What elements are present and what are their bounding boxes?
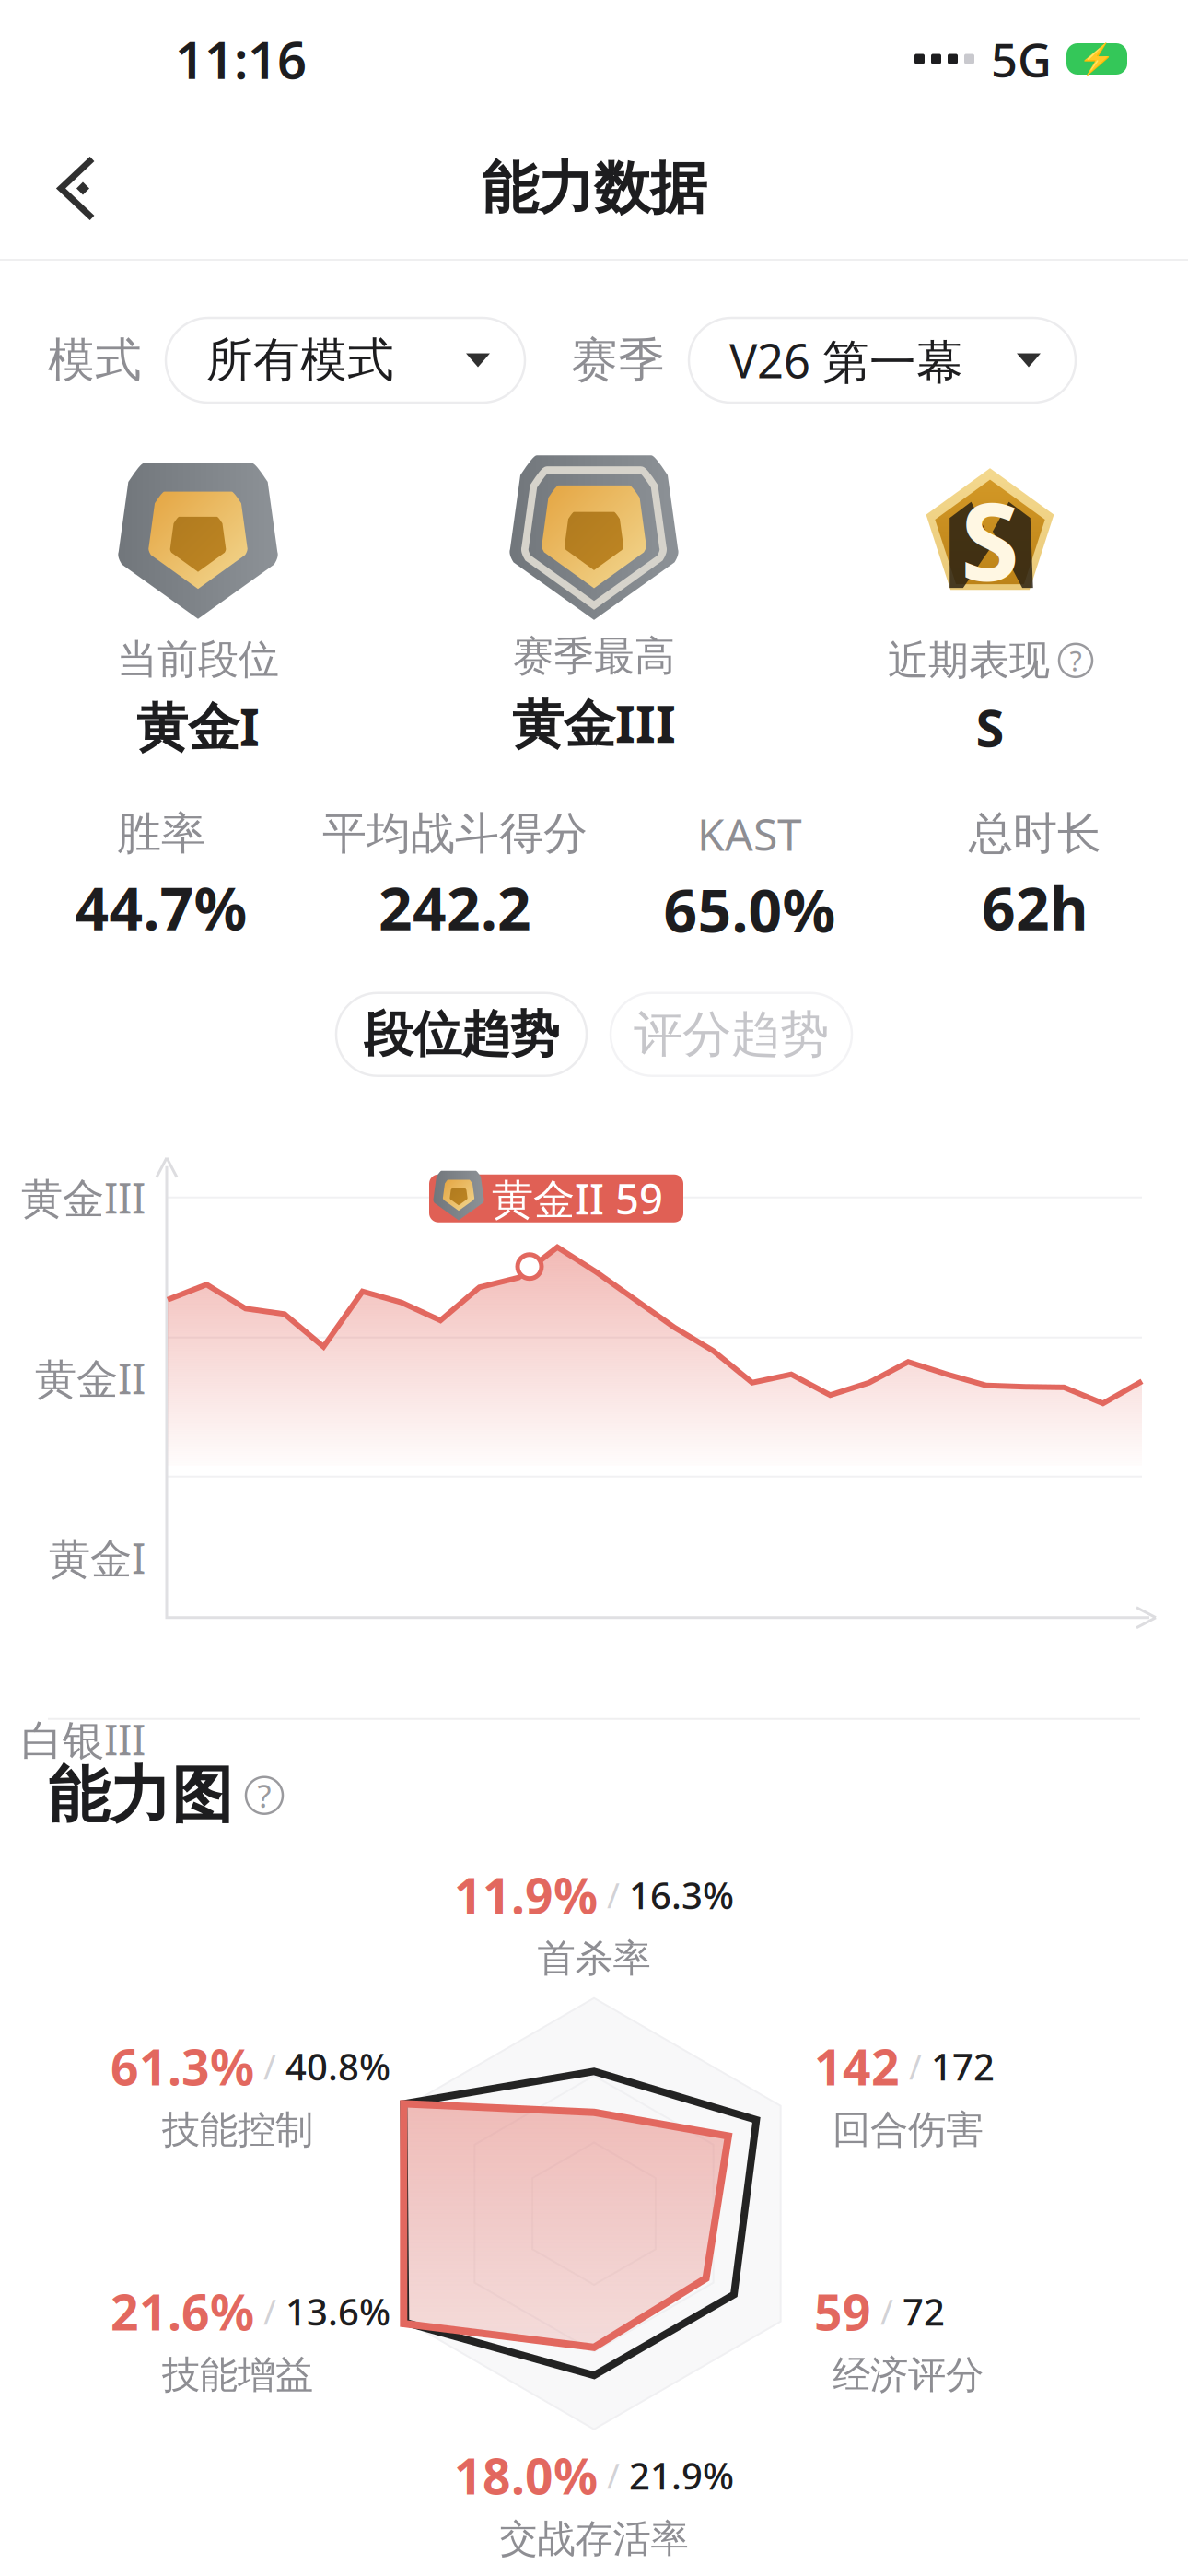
staticText: 赛季最高 (513, 631, 675, 681)
staticText: 白银III (21, 1711, 146, 1767)
staticText: 黄金III (21, 1170, 146, 1225)
staticText: 61.3% (111, 2034, 254, 2099)
staticText: 平均战斗得分 (322, 807, 588, 861)
staticText: 72 (903, 2287, 945, 2336)
staticText: ? (1070, 642, 1082, 679)
staticText: 技能控制 (162, 2106, 313, 2153)
staticText: 242.2 (379, 868, 531, 946)
staticText: 13.6% (285, 2287, 390, 2336)
staticText: / (900, 2043, 931, 2089)
staticText: ? (257, 1774, 271, 1817)
staticText: ⚡ (1078, 42, 1115, 76)
staticText: 经济评分 (833, 2351, 984, 2398)
staticText: 技能增益 (162, 2351, 313, 2398)
staticText: 黄金I (136, 692, 260, 760)
staticText: 总时长 (969, 807, 1101, 861)
staticText: / (871, 2288, 903, 2334)
staticText: 21.6% (111, 2279, 254, 2344)
staticText: 65.0% (664, 870, 836, 949)
staticText: / (598, 1872, 629, 1918)
button[interactable]: 评分趋势 (611, 993, 852, 1076)
staticText: 当前段位 (117, 635, 279, 684)
staticText: S (961, 468, 1019, 610)
staticText: 回合伤害 (833, 2106, 984, 2153)
staticText: 黄金III (512, 688, 676, 757)
button[interactable]: 返回 (42, 146, 112, 231)
staticText: 40.8% (285, 2042, 390, 2091)
button[interactable]: 所有模式 (166, 318, 525, 403)
staticText: S (976, 693, 1004, 761)
staticText: 62h (982, 868, 1089, 946)
staticText: 59 (814, 2279, 871, 2344)
staticText: V26 第一幕 (729, 329, 963, 391)
staticText: 44.7% (75, 868, 247, 946)
staticText: 18.0% (454, 2443, 598, 2508)
staticText: / (598, 2452, 629, 2498)
staticText: KAST (697, 804, 802, 863)
staticText: 黄金I (49, 1530, 146, 1585)
staticText: 模式 (48, 332, 142, 389)
staticText: 5G (991, 28, 1052, 90)
staticText: 首杀率 (537, 1935, 651, 1982)
staticText: 21.9% (629, 2451, 734, 2500)
staticText: / (254, 2288, 285, 2334)
button[interactable]: V26 第一幕 (689, 318, 1076, 403)
staticText: 胜率 (117, 807, 205, 861)
staticText: 黄金II 59 (492, 1171, 663, 1226)
staticText: 能力数据 (482, 154, 706, 223)
staticText: 段位趋势 (364, 1004, 559, 1065)
staticText: 所有模式 (206, 332, 394, 389)
staticText: 交战存活率 (500, 2515, 688, 2562)
staticText: 黄金II (35, 1350, 146, 1406)
staticText: 172 (931, 2042, 995, 2091)
staticText: 142 (814, 2034, 900, 2099)
staticText: 16.3% (629, 1870, 734, 1919)
staticText: 评分趋势 (634, 1004, 829, 1065)
staticText: 11.9% (454, 1862, 598, 1927)
staticText: 能力图 (48, 1758, 233, 1833)
staticText: / (254, 2043, 285, 2089)
staticText: 11:16 (175, 25, 307, 93)
staticText: 近期表现 (888, 636, 1050, 685)
button[interactable]: 段位趋势 (336, 993, 587, 1076)
staticText: 赛季 (571, 332, 665, 389)
